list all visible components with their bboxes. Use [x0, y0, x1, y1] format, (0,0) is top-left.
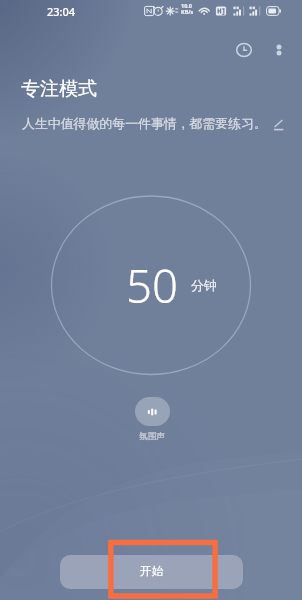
button[interactable]: Edit [268, 114, 290, 136]
staticText: 开始 [140, 564, 163, 578]
button[interactable]: More options [267, 38, 291, 62]
staticText: KB/s [181, 8, 194, 15]
staticText: 50 [126, 254, 178, 316]
staticText: 人生中值得做的每一件事情，都需要练习。 [22, 116, 267, 132]
staticText: 23:04 [47, 4, 76, 19]
button[interactable]: Timer history [232, 38, 256, 62]
staticText: 氛围声 [139, 431, 165, 442]
button[interactable]: 开始 [60, 555, 243, 589]
staticText: 10.0 [181, 2, 192, 9]
staticText: 专注模式 [21, 77, 97, 101]
button[interactable]: Ambient sound [135, 397, 170, 426]
staticText: 分钟 [191, 277, 217, 293]
